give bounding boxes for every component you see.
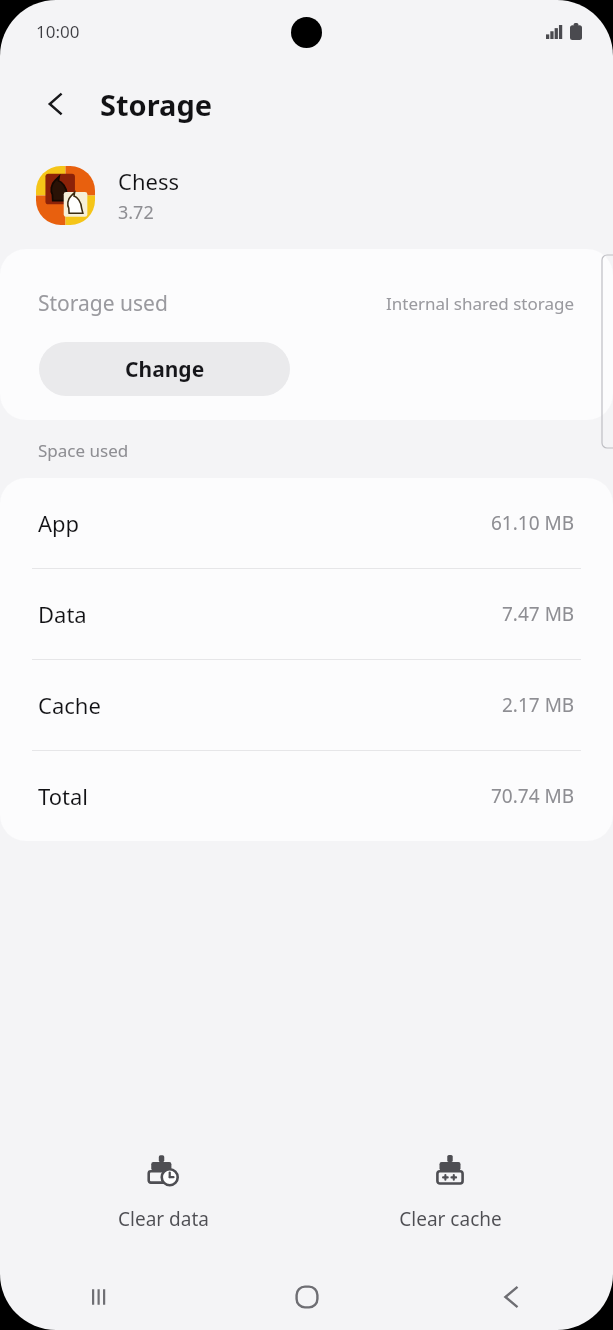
staticText: 3.72 — [118, 200, 154, 225]
staticText: Clear cache — [399, 1206, 502, 1232]
button[interactable]: Data — [0, 569, 613, 659]
staticText: Space used — [38, 439, 129, 462]
button[interactable]: Home — [205, 1264, 409, 1330]
staticText: Storage — [100, 85, 213, 124]
staticText: App — [38, 508, 80, 538]
staticText: 70.74 MB — [491, 783, 575, 809]
staticText: 7.47 MB — [502, 601, 575, 627]
staticText: Chess — [118, 166, 179, 196]
button[interactable]: Back — [34, 82, 78, 126]
button[interactable]: Total — [0, 751, 613, 841]
staticText: Data — [38, 599, 87, 629]
button[interactable]: Change — [39, 342, 290, 396]
button[interactable]: App — [0, 478, 613, 568]
button[interactable]: Recent apps — [0, 1264, 205, 1330]
button[interactable]: Clear cache — [325, 1142, 575, 1242]
staticText: 2.17 MB — [502, 692, 575, 718]
staticText: 61.10 MB — [491, 510, 575, 536]
button[interactable]: Clear data — [38, 1142, 288, 1242]
staticText: Cache — [38, 690, 101, 720]
staticText: Internal shared storage — [386, 292, 575, 315]
staticText: Clear data — [118, 1206, 209, 1232]
staticText: Total — [38, 781, 88, 811]
button[interactable]: Cache — [0, 660, 613, 750]
button[interactable]: Back — [409, 1264, 613, 1330]
staticText: Storage used — [38, 289, 168, 318]
staticText: Change — [125, 355, 205, 384]
staticText: 10:00 — [36, 20, 80, 43]
